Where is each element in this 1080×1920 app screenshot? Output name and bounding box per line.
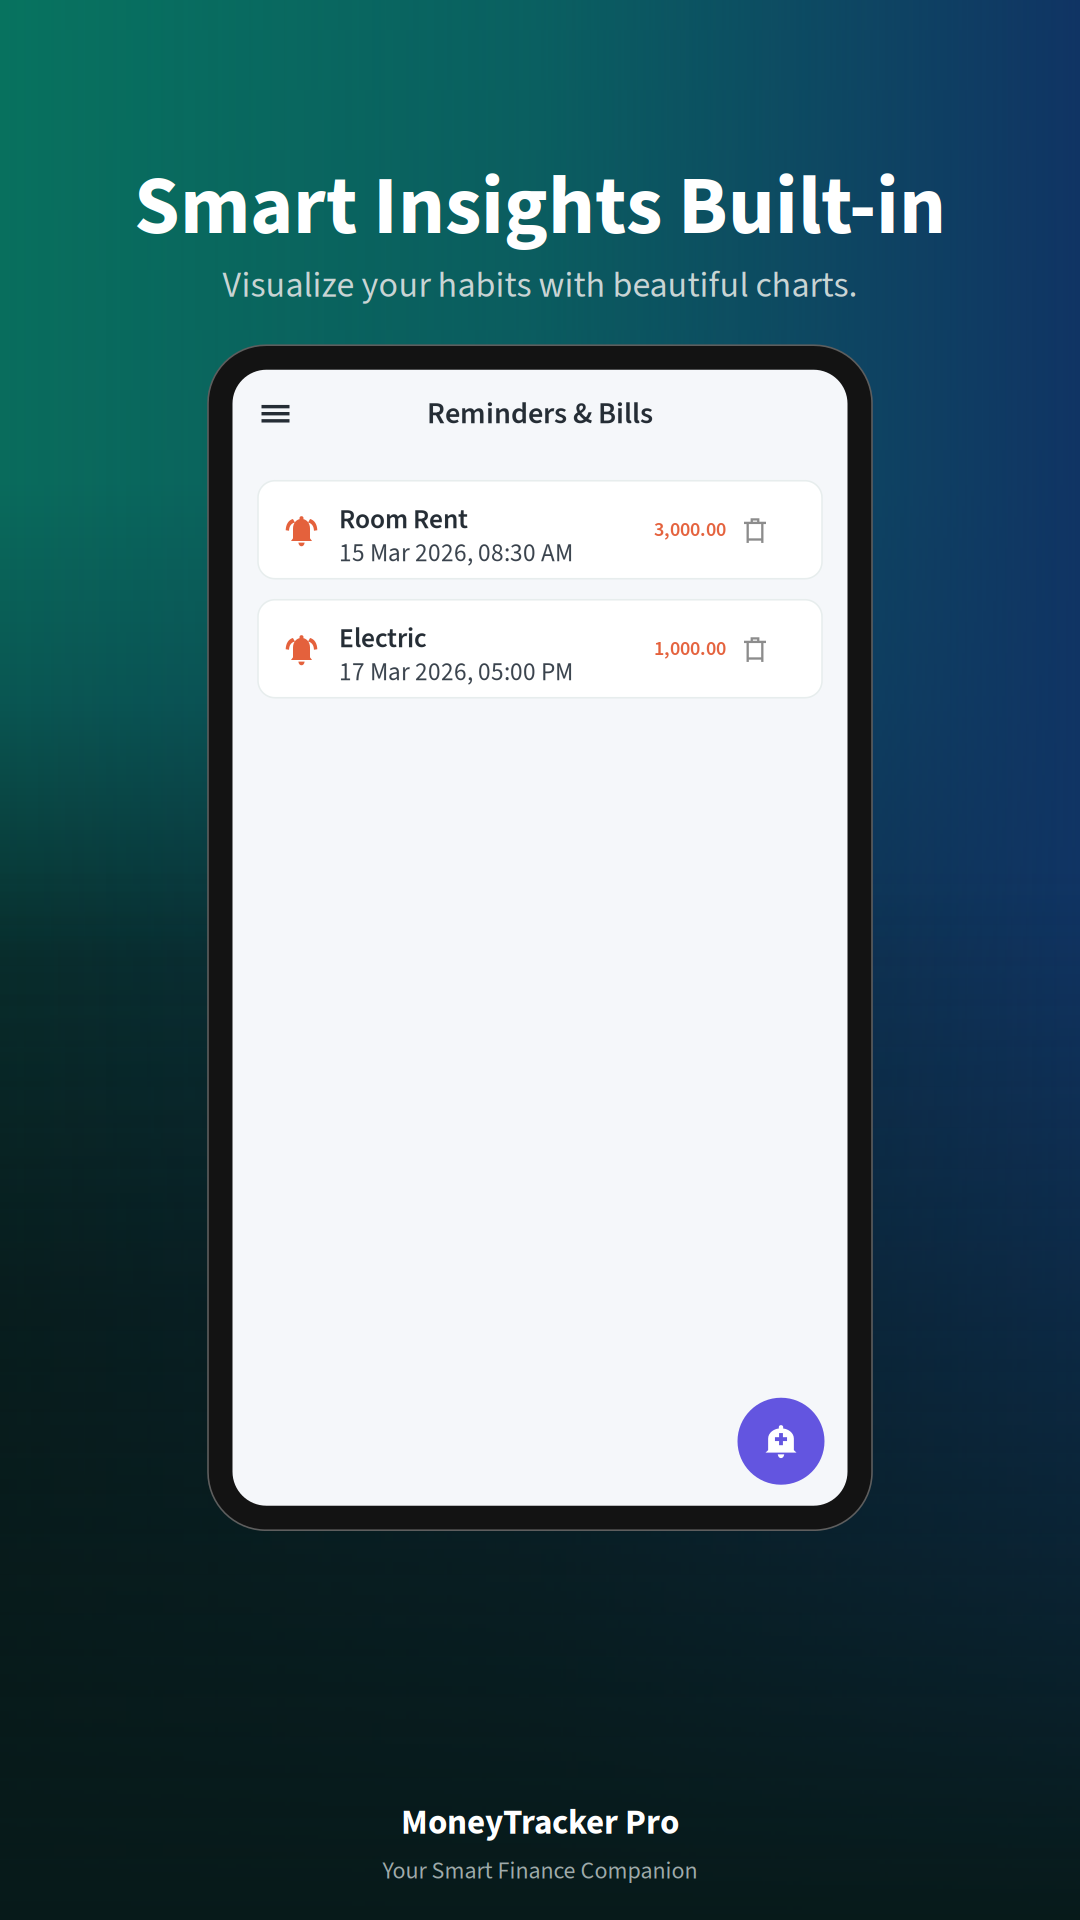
staticText: MoneyTracker Pro	[401, 1798, 679, 1848]
button[interactable]: Electric	[258, 600, 822, 698]
staticText: Smart Insights Built-in	[134, 149, 946, 266]
staticText: Reminders & Bills	[427, 392, 653, 435]
staticText: Electric	[339, 619, 427, 658]
button[interactable]: Menu	[246, 385, 304, 443]
staticText: 3,000.00	[654, 515, 726, 544]
staticText: 1,000.00	[654, 634, 726, 663]
staticText: Your Smart Finance Companion	[382, 1854, 697, 1888]
staticText: Visualize your habits with beautiful cha…	[222, 260, 857, 311]
button[interactable]: Add reminder	[737, 1398, 824, 1485]
button[interactable]: Room Rent	[258, 481, 822, 579]
staticText: Room Rent	[339, 500, 468, 539]
staticText: 17 Mar 2026, 05:00 PM	[339, 654, 573, 690]
staticText: 15 Mar 2026, 08:30 AM	[339, 535, 573, 571]
